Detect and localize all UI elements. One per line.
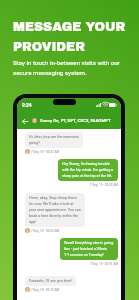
staticText: Hmm, okay. Stop doing those for now. We'… — [29, 196, 81, 224]
button[interactable]: Hi John, how are the exercises going? — [25, 132, 83, 148]
staticText: 7 Sep, 19 - 03:12 AM — [31, 288, 60, 292]
staticText: Fantastic, I'll see you then! — [29, 279, 72, 283]
staticText: MESSAGE YOUR PROVIDER — [13, 20, 126, 54]
button[interactable]: Hmm, okay. Stop doing those for now. We'… — [25, 193, 85, 227]
staticText: 7 Sep, 19 - 03:01 AM — [89, 262, 118, 266]
staticText: 7 Sep, 19 - 02:52 AM — [89, 183, 118, 187]
staticText: 7 Sep, 19 - 02:47 AM — [31, 150, 60, 154]
staticText: Stay in touch in-between visits with our… — [13, 59, 131, 76]
button[interactable]: Back — [20, 116, 30, 126]
staticText: Great! Everything else is going fine - j… — [64, 241, 114, 257]
staticText: Hey Sunny, I'm having trouble with the h… — [62, 162, 114, 178]
staticText: 9:24 — [22, 102, 32, 108]
button[interactable]: Great! Everything else is going fine - j… — [60, 238, 118, 260]
button[interactable]: Hey Sunny, I'm having trouble with the h… — [58, 159, 118, 181]
button[interactable]: Back — [17, 112, 121, 129]
button[interactable]: Fantastic, I'll see you then! — [25, 276, 76, 286]
staticText: Sunny Do, PT, DPT, CSCS, FAAOMPT — [40, 118, 111, 123]
staticText: 7 Sep, 19 - 02:55 AM — [31, 229, 60, 233]
staticText: Hi John, how are the exercises going? — [29, 135, 79, 145]
